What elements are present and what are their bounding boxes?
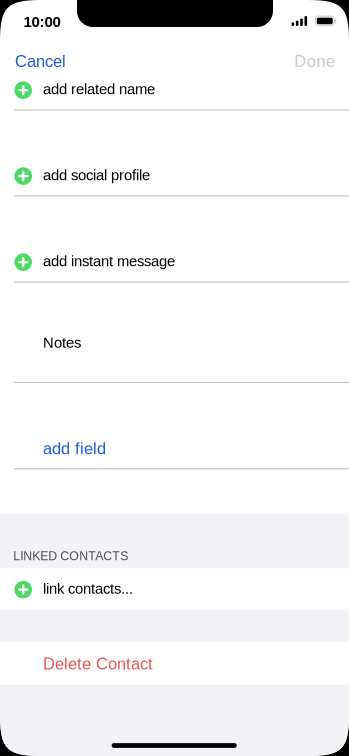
staticText: add social profile <box>43 167 150 183</box>
staticText: LINKED CONTACTS <box>13 549 128 563</box>
staticText: Cancel <box>15 52 66 70</box>
staticText: Notes <box>43 334 81 351</box>
button[interactable]: add social profile <box>0 156 349 194</box>
button[interactable]: Cancel <box>15 44 85 78</box>
staticText: add instant message <box>43 253 175 269</box>
button[interactable]: add related name <box>0 70 349 108</box>
button[interactable]: Done <box>275 44 335 78</box>
staticText: link contacts... <box>43 580 133 597</box>
button[interactable]: add instant message <box>0 242 349 280</box>
staticText: 10:00 <box>23 13 60 30</box>
button[interactable]: Notes <box>0 323 349 362</box>
staticText: Done <box>294 52 335 70</box>
staticText: Delete Contact <box>43 654 153 673</box>
button[interactable]: link contacts... <box>0 568 349 609</box>
staticText: add related name <box>43 81 155 97</box>
button[interactable]: Delete Contact <box>0 642 349 685</box>
staticText: add field <box>43 439 106 458</box>
button[interactable]: add field <box>0 429 349 468</box>
